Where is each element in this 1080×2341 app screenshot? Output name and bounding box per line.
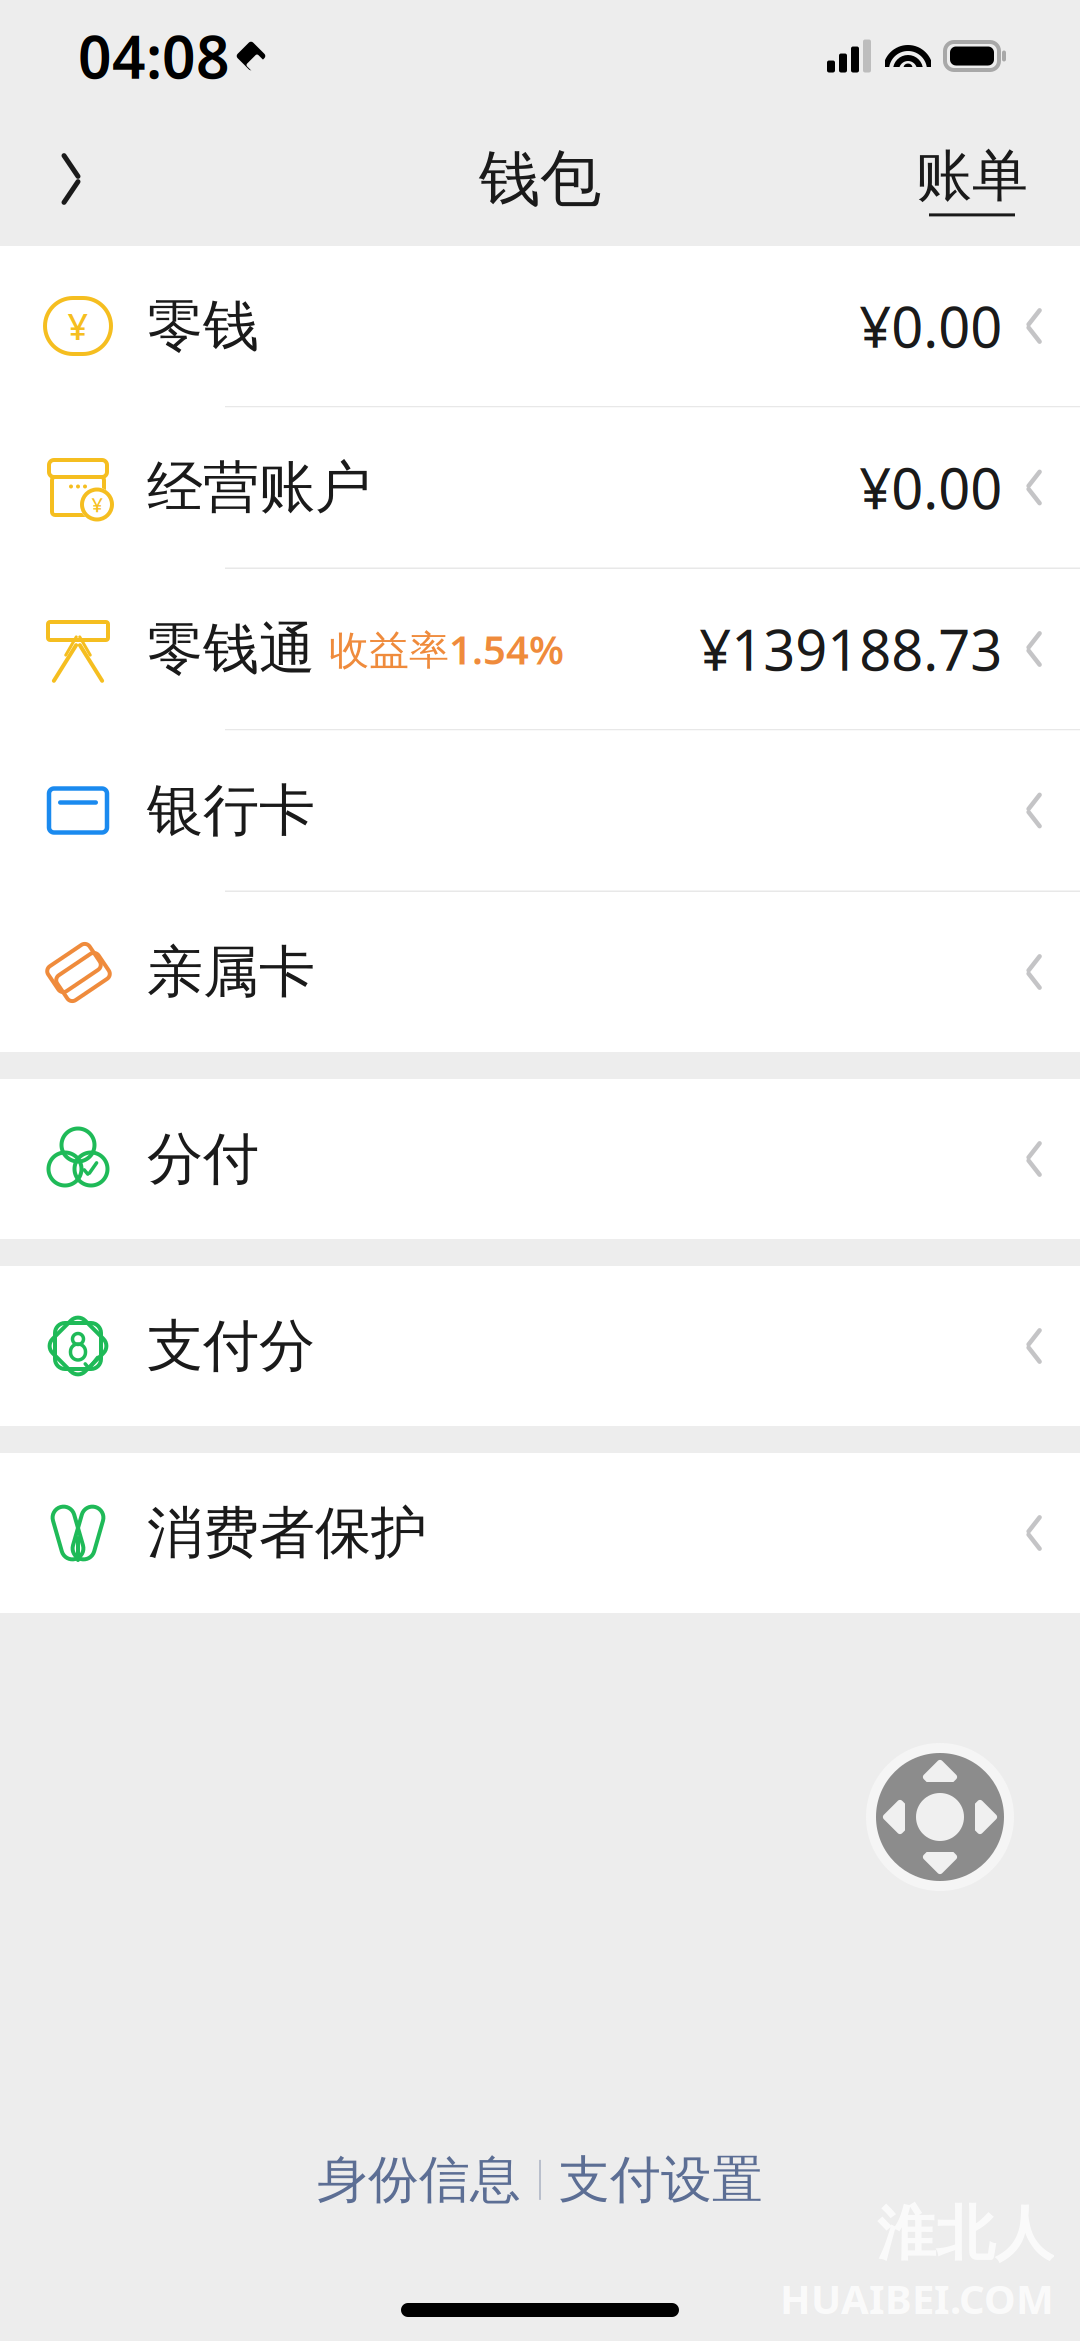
- button[interactable]: 零钱通: [0, 569, 1080, 729]
- staticText: 支付分: [147, 1312, 315, 1380]
- button[interactable]: ¥: [0, 246, 1080, 406]
- staticText: HUAIBEI.COM: [780, 2272, 1054, 2325]
- staticText: 支付设置: [559, 2149, 763, 2211]
- button[interactable]: 支付分: [0, 1266, 1080, 1426]
- button[interactable]: 银行卡: [0, 730, 1080, 890]
- button[interactable]: 账单: [908, 132, 1036, 226]
- staticText: 零钱通: [147, 615, 315, 683]
- staticText: 钱包: [479, 141, 601, 217]
- button[interactable]: 支付设置: [541, 2137, 781, 2223]
- staticText: 收益率1.54%: [329, 622, 564, 675]
- button[interactable]: 消费者保护: [0, 1453, 1080, 1613]
- staticText: 账单: [916, 142, 1028, 210]
- staticText: ¥0.00: [859, 450, 1002, 525]
- staticText: 银行卡: [147, 776, 315, 845]
- staticText: 经营账户: [147, 453, 371, 522]
- staticText: 淮北人: [877, 2198, 1054, 2270]
- staticText: ¥: [91, 491, 102, 518]
- staticText: ¥0.00: [859, 289, 1002, 363]
- button[interactable]: 分付: [0, 1079, 1080, 1239]
- staticText: 亲属卡: [147, 938, 315, 1006]
- staticText: 身份信息: [317, 2149, 521, 2211]
- staticText: 消费者保护: [147, 1499, 427, 1567]
- staticText: 分付: [147, 1125, 259, 1193]
- button[interactable]: 身份信息: [299, 2137, 539, 2223]
- button[interactable]: 亲属卡: [0, 892, 1080, 1052]
- button[interactable]: 悬浮控制器: [864, 1741, 1016, 1893]
- button[interactable]: ¥: [0, 407, 1080, 567]
- button[interactable]: 返回: [28, 136, 114, 222]
- staticText: ¥139188.73: [699, 612, 1002, 686]
- staticText: 04:08: [78, 17, 230, 95]
- staticText: ¥: [67, 302, 88, 350]
- staticText: 零钱: [147, 292, 259, 360]
